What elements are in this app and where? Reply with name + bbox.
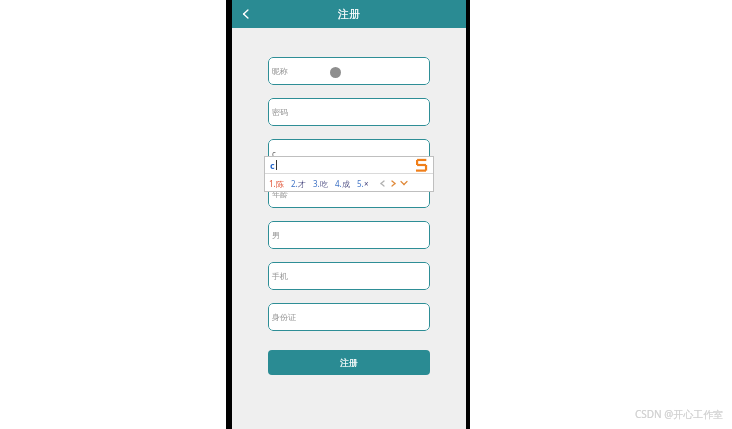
staticText: 吃 bbox=[320, 179, 328, 189]
staticText: 1. bbox=[269, 178, 276, 189]
button[interactable]: 2. bbox=[291, 178, 306, 189]
staticText: 年龄 bbox=[272, 189, 288, 199]
button[interactable]: c bbox=[268, 139, 430, 167]
button[interactable]: 男 bbox=[268, 221, 430, 249]
button[interactable]: Previous page bbox=[378, 179, 386, 187]
button[interactable]: 注册 bbox=[268, 350, 430, 375]
staticText: × bbox=[364, 178, 369, 189]
staticText: 男 bbox=[272, 230, 280, 240]
button[interactable]: 手机 bbox=[268, 262, 430, 290]
button[interactable]: Next page bbox=[389, 179, 397, 187]
staticText: 3. bbox=[313, 178, 320, 189]
button[interactable]: 身份证 bbox=[268, 303, 430, 331]
button[interactable]: 年龄 bbox=[268, 180, 430, 208]
staticText: 成 bbox=[342, 179, 350, 189]
staticText: 手机 bbox=[272, 271, 288, 281]
staticText: 身份证 bbox=[272, 312, 296, 322]
staticText: 注册 bbox=[340, 357, 358, 368]
button[interactable]: 5. bbox=[357, 178, 369, 189]
staticText: 注册 bbox=[338, 7, 360, 21]
button[interactable]: 1. bbox=[269, 178, 284, 189]
staticText: 5. bbox=[357, 178, 364, 189]
staticText: 才 bbox=[298, 179, 306, 189]
button[interactable]: 昵称 bbox=[268, 57, 430, 85]
staticText: 密码 bbox=[272, 107, 288, 117]
staticText: CSDN @开心工作室 bbox=[635, 407, 724, 421]
button[interactable]: Back bbox=[232, 0, 260, 28]
staticText: 4. bbox=[335, 178, 342, 189]
staticText: c bbox=[272, 148, 276, 159]
staticText: c bbox=[270, 159, 275, 171]
button[interactable]: 3. bbox=[313, 178, 328, 189]
button[interactable]: Expand candidates bbox=[400, 179, 408, 187]
staticText: 陈 bbox=[276, 179, 284, 189]
staticText: 2. bbox=[291, 178, 298, 189]
button[interactable]: 4. bbox=[335, 178, 350, 189]
button[interactable]: 密码 bbox=[268, 98, 430, 126]
staticText: 昵称 bbox=[272, 66, 288, 76]
